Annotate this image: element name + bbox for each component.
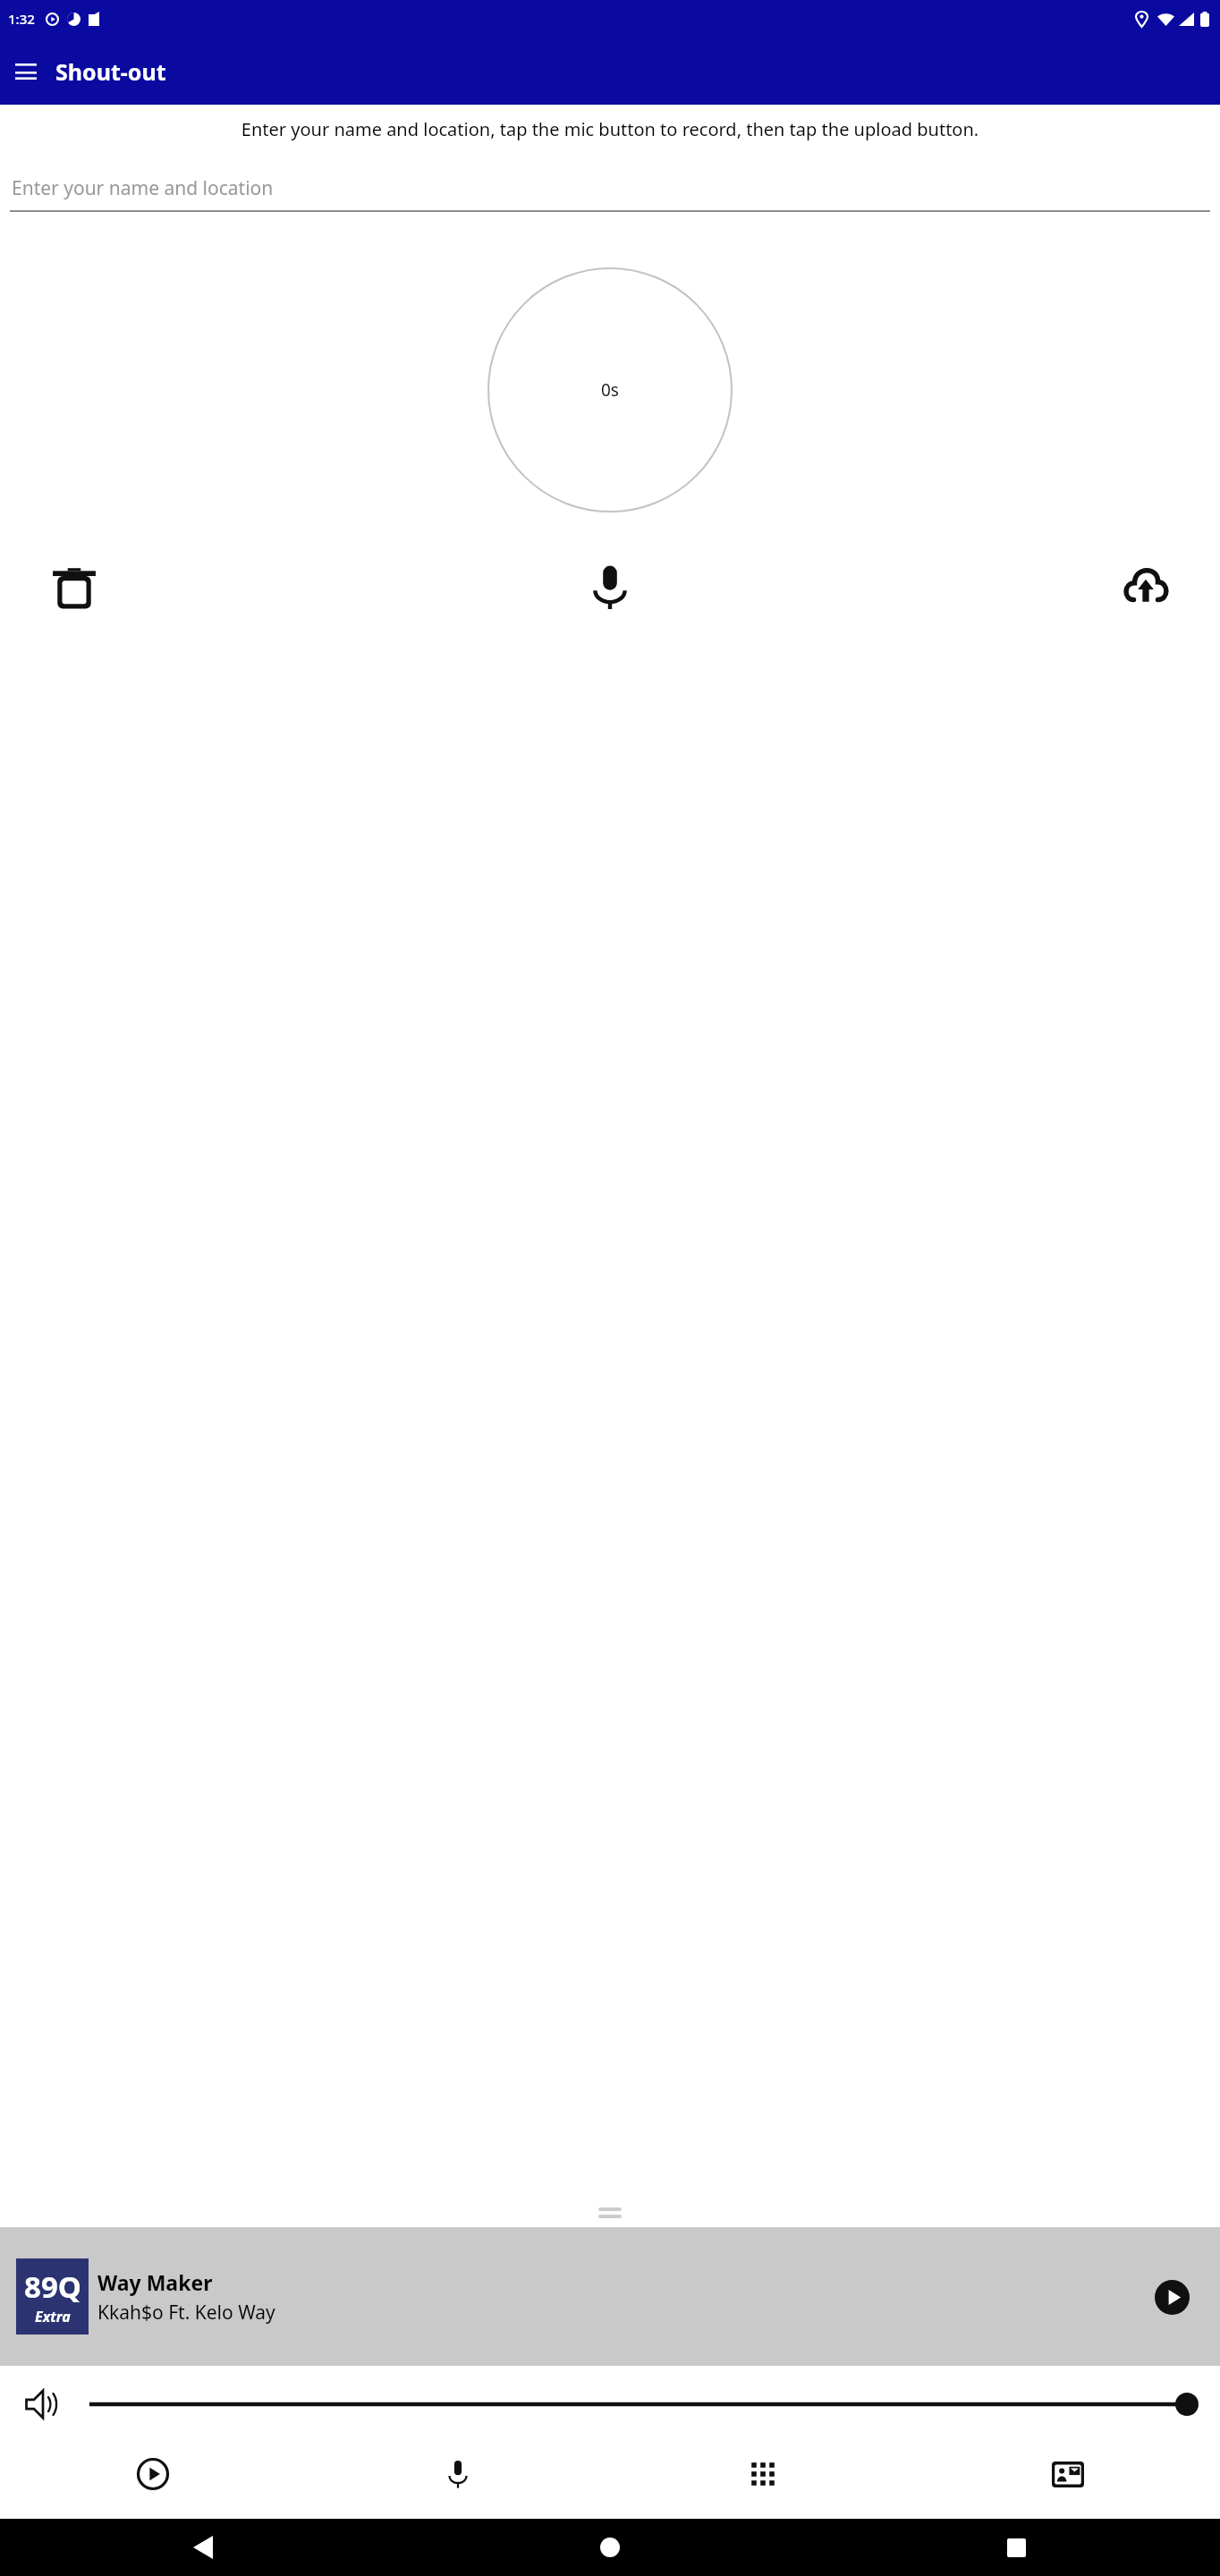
staticText: Enter your name and location bbox=[12, 175, 274, 201]
button[interactable]: Volume bbox=[18, 2379, 68, 2429]
button[interactable]: Play bbox=[1145, 2270, 1199, 2324]
staticText: Extra bbox=[35, 2307, 71, 2326]
button[interactable]: Recording timer bbox=[487, 267, 733, 513]
button[interactable]: Expand player bbox=[598, 2207, 622, 2218]
staticText: 0s bbox=[601, 378, 619, 402]
button[interactable]: Open navigation menu bbox=[4, 50, 47, 93]
staticText: Kkah$o Ft. Kelo Way bbox=[97, 2300, 275, 2326]
button[interactable]: Upload recording bbox=[1111, 552, 1181, 622]
staticText: 89Q bbox=[24, 2267, 81, 2307]
button[interactable]: Contact bbox=[915, 2442, 1220, 2519]
button[interactable]: Delete recording bbox=[39, 552, 109, 622]
button[interactable]: Record with microphone bbox=[575, 552, 645, 622]
staticText: 1:32 bbox=[8, 10, 35, 28]
button[interactable]: Home bbox=[406, 2519, 813, 2576]
button[interactable]: Recent apps bbox=[813, 2519, 1220, 2576]
button[interactable]: Enter your name and location bbox=[10, 175, 1210, 212]
button[interactable]: 89Q bbox=[0, 2227, 1220, 2366]
button[interactable]: Back bbox=[0, 2519, 406, 2576]
button[interactable]: Play bbox=[0, 2442, 305, 2519]
staticText: Enter your name and location, tap the mi… bbox=[18, 117, 1202, 141]
staticText: Shout-out bbox=[55, 56, 166, 87]
button[interactable]: Volume slider bbox=[89, 2385, 1197, 2424]
button[interactable]: Apps bbox=[610, 2442, 915, 2519]
staticText: Way Maker bbox=[97, 2268, 213, 2296]
button[interactable]: Record bbox=[305, 2442, 610, 2519]
